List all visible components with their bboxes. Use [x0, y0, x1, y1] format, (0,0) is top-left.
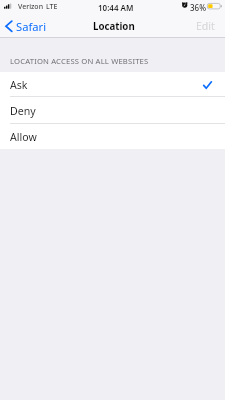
- button[interactable]: Ask: [0, 72, 225, 97]
- staticText: Deny: [10, 104, 36, 118]
- button[interactable]: Allow: [0, 124, 225, 149]
- staticText: Safari: [16, 19, 47, 34]
- staticText: 36%: [190, 2, 206, 13]
- staticText: LOCATION ACCESS ON ALL WEBSITES: [10, 56, 149, 66]
- button[interactable]: Deny: [0, 97, 225, 124]
- button[interactable]: Edit: [186, 14, 225, 38]
- staticText: LTE: [46, 2, 58, 12]
- other: Battery 36 percent: [207, 3, 222, 10]
- other: Selected: [203, 81, 212, 89]
- other: Cellular signal: [4, 0, 18, 14]
- staticText: Ask: [10, 78, 28, 92]
- staticText: Verizon: [18, 2, 44, 12]
- staticText: Location: [93, 20, 135, 33]
- other: Alarm set: [182, 2, 188, 8]
- staticText: 10:44 AM: [98, 2, 134, 13]
- button[interactable]: Safari: [0, 14, 63, 38]
- staticText: Allow: [10, 130, 37, 144]
- staticText: Edit: [196, 19, 215, 33]
